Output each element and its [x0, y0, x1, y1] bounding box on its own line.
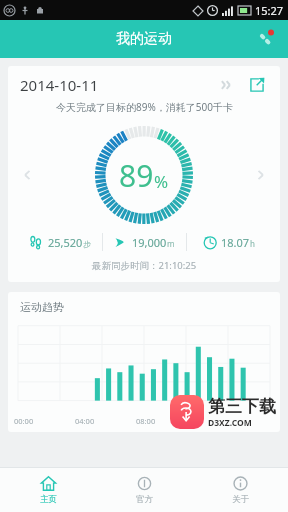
button[interactable]: 关于	[192, 468, 288, 512]
staticText: 89	[119, 155, 154, 196]
staticText: h	[250, 238, 255, 249]
staticText: 2014-10-11	[20, 75, 99, 95]
button[interactable]: 主页	[0, 468, 96, 512]
staticText: 25,520	[48, 235, 83, 250]
button[interactable]: 18.07	[187, 235, 270, 250]
staticText: m	[167, 238, 175, 249]
staticText: 我的运动	[116, 30, 172, 48]
button[interactable]: 19,000	[103, 235, 186, 250]
button[interactable]: Bind device	[252, 26, 278, 52]
staticText: 08:00	[136, 416, 156, 426]
button[interactable]: Previous	[14, 162, 40, 188]
staticText: 今天完成了目标的89%，消耗了500千卡	[56, 100, 233, 114]
button[interactable]: Next	[248, 162, 274, 188]
staticText: 18.07	[221, 235, 250, 250]
button[interactable]: 官方	[96, 468, 192, 512]
staticText: 最新同步时间：21:10:25	[92, 259, 197, 272]
staticText: 关于	[232, 494, 249, 505]
staticText: %	[154, 170, 169, 193]
staticText: 官方	[136, 494, 153, 505]
staticText: 15:27	[255, 3, 284, 18]
staticText: D3XZ.COM	[208, 417, 252, 429]
button[interactable]: 25,520	[18, 235, 102, 250]
staticText: 运动趋势	[20, 300, 64, 314]
staticText: 00:00	[14, 416, 34, 426]
staticText: 主页	[40, 494, 57, 505]
button[interactable]: Next date	[216, 74, 238, 96]
button[interactable]: Share	[246, 74, 268, 96]
staticText: 04:00	[75, 416, 95, 426]
staticText: 步	[83, 239, 91, 249]
staticText: 第三下载	[208, 396, 276, 417]
staticText: 19,000	[132, 235, 167, 250]
